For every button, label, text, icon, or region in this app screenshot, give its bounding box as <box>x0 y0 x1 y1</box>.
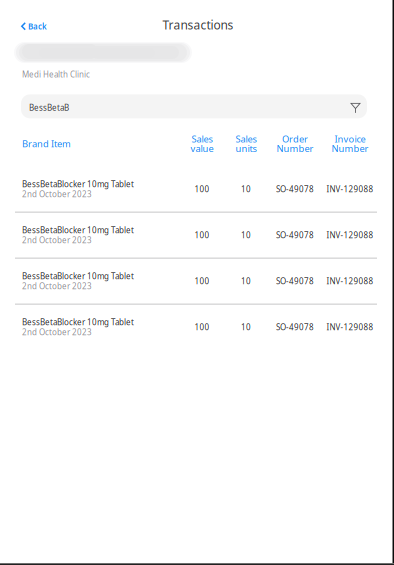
staticText: 2nd October 2023 <box>22 189 92 199</box>
staticText: Number <box>276 142 313 155</box>
staticText: 100 <box>194 230 209 240</box>
staticText: 10 <box>241 322 251 332</box>
staticText: Number <box>331 142 368 155</box>
staticText: INV-129088 <box>326 230 373 240</box>
staticText: 2nd October 2023 <box>22 327 92 337</box>
staticText: SO-49078 <box>276 276 314 286</box>
staticText: Medi Health Clinic <box>22 69 90 80</box>
staticText: 10 <box>241 184 251 194</box>
staticText: BessBetaBlocker 10mg Tablet <box>22 225 134 235</box>
staticText: Sales <box>191 133 212 145</box>
staticText: BessBetaB <box>29 102 69 113</box>
staticText: BessBetaBlocker 10mg Tablet <box>22 317 134 327</box>
staticText: 2nd October 2023 <box>22 235 92 245</box>
staticText: 10 <box>241 230 251 240</box>
staticText: Transactions <box>162 17 233 33</box>
button[interactable]: Filter <box>345 97 366 119</box>
staticText: SO-49078 <box>276 184 314 194</box>
button[interactable]: BessBetaB <box>21 95 367 119</box>
staticText: BessBetaBlocker 10mg Tablet <box>22 179 134 189</box>
staticText: INV-129088 <box>326 322 373 332</box>
staticText: units <box>235 142 256 155</box>
staticText: Sales <box>235 133 256 145</box>
staticText: BessBetaBlocker 10mg Tablet <box>22 271 134 281</box>
staticText: Brand Item <box>22 137 71 150</box>
staticText: 100 <box>194 184 209 194</box>
staticText: 100 <box>194 276 209 286</box>
button[interactable]: BessBetaBlocker 10mg Tablet <box>0 259 394 304</box>
staticText: SO-49078 <box>276 322 314 332</box>
staticText: SO-49078 <box>276 230 314 240</box>
staticText: INV-129088 <box>326 184 373 194</box>
staticText: Invoice <box>334 133 365 145</box>
staticText: Order <box>282 133 308 145</box>
staticText: Back <box>28 21 47 32</box>
staticText: 10 <box>241 276 251 286</box>
button[interactable]: BessBetaBlocker 10mg Tablet <box>0 305 394 350</box>
button[interactable]: BessBetaBlocker 10mg Tablet <box>0 167 394 212</box>
button[interactable]: BessBetaBlocker 10mg Tablet <box>0 213 394 258</box>
staticText: 2nd October 2023 <box>22 281 92 291</box>
button[interactable]: Back <box>0 0 68 37</box>
staticText: INV-129088 <box>326 276 373 286</box>
staticText: value <box>190 142 213 155</box>
staticText: 100 <box>194 322 209 332</box>
